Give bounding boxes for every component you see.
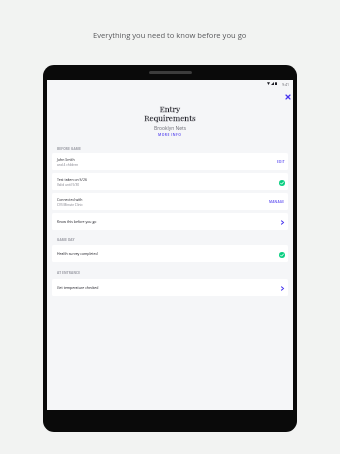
staticText: Everything you need to know before you g… xyxy=(93,30,247,40)
staticText: BEFORE GAME xyxy=(57,147,81,151)
staticText: EDIT xyxy=(277,160,285,164)
staticText: MORE INFO xyxy=(158,132,182,137)
staticText: Know this before you go xyxy=(57,219,97,224)
staticText: 9:41 xyxy=(282,82,290,86)
staticText: AT ENTRANCE xyxy=(57,271,81,275)
staticText: CVS Minute Clinic xyxy=(57,203,83,207)
other: Completed xyxy=(279,252,285,258)
staticText: GAME DAY xyxy=(57,238,75,242)
staticText: Entry Requirements xyxy=(144,103,196,124)
button[interactable]: Health survey completed xyxy=(52,245,288,262)
staticText: Connected with xyxy=(57,197,83,202)
other: Completed xyxy=(279,180,285,186)
button[interactable]: MORE INFO xyxy=(156,131,184,138)
button[interactable]: Get temperature checked xyxy=(52,279,288,296)
button[interactable]: Close xyxy=(282,91,292,101)
button[interactable]: Know this before you go xyxy=(52,213,288,230)
staticText: Brooklyn Nets xyxy=(154,125,187,132)
staticText: Get temperature checked xyxy=(57,285,99,290)
other: Open xyxy=(281,220,284,225)
staticText: Health survey completed xyxy=(57,251,98,256)
staticText: John Smith xyxy=(57,157,75,162)
other: Open xyxy=(281,286,284,291)
staticText: Valid until 5/30 xyxy=(57,183,80,187)
button[interactable]: Connected with xyxy=(52,193,288,210)
staticText: MANAGE xyxy=(269,200,285,204)
button[interactable]: John Smith xyxy=(52,153,288,170)
staticText: and 4 children xyxy=(57,163,79,167)
staticText: Test taken on 5/26 xyxy=(57,177,87,182)
button[interactable]: Test taken on 5/26 xyxy=(52,173,288,190)
